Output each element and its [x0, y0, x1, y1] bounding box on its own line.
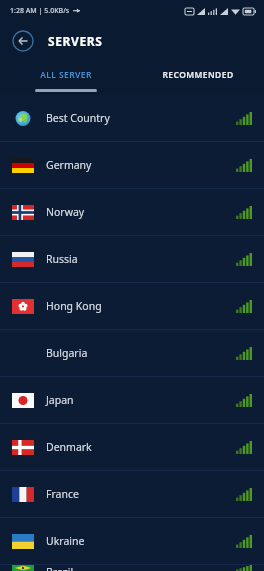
- staticText: Germany: [46, 158, 92, 172]
- button[interactable]: Germany: [0, 142, 264, 188]
- staticText: 1:28 AM | 5.0KB/s: [10, 6, 70, 16]
- staticText: RECOMMENDED: [162, 69, 234, 81]
- staticText: Japan: [46, 393, 74, 407]
- button[interactable]: France: [0, 471, 264, 517]
- staticText: Bulgaria: [46, 346, 88, 360]
- staticText: Best Country: [46, 111, 110, 125]
- button[interactable]: Bulgaria: [0, 330, 264, 376]
- staticText: Brazil: [46, 565, 74, 571]
- staticText: Norway: [46, 205, 85, 219]
- button[interactable]: Hong Kong: [0, 283, 264, 329]
- button[interactable]: Back: [12, 30, 34, 52]
- staticText: ALL SERVER: [40, 69, 92, 81]
- staticText: Ukraine: [46, 534, 85, 548]
- staticText: Russia: [46, 252, 78, 266]
- button[interactable]: Brazil: [0, 565, 264, 571]
- staticText: Denmark: [46, 440, 92, 454]
- staticText: SERVERS: [48, 33, 103, 49]
- button[interactable]: Ukraine: [0, 518, 264, 564]
- button[interactable]: Russia: [0, 236, 264, 282]
- button[interactable]: Best Country: [0, 95, 264, 141]
- button[interactable]: Denmark: [0, 424, 264, 470]
- button[interactable]: Japan: [0, 377, 264, 423]
- button[interactable]: RECOMMENDED: [132, 60, 264, 95]
- button[interactable]: Norway: [0, 189, 264, 235]
- staticText: France: [46, 487, 79, 501]
- staticText: Hong Kong: [46, 299, 102, 313]
- button[interactable]: ALL SERVER: [0, 60, 132, 95]
